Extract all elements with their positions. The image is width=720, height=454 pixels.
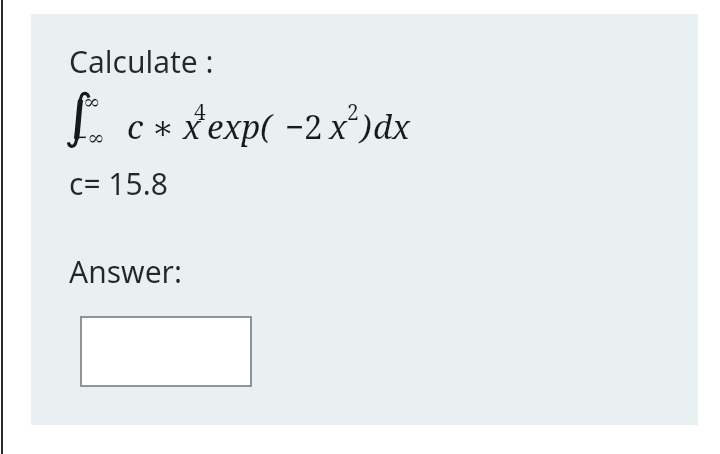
staticText: −∞ xyxy=(75,123,105,152)
staticText: dx xyxy=(373,104,411,149)
staticText: ) xyxy=(360,104,372,149)
staticText: exp( xyxy=(207,104,272,149)
staticText: −2 xyxy=(285,104,323,149)
staticText: Answer: xyxy=(69,251,183,292)
staticText: ∞ xyxy=(83,90,101,114)
staticText: 4 xyxy=(194,98,206,127)
staticText: 2 xyxy=(347,98,359,127)
button[interactable]: Answer input field xyxy=(80,316,252,387)
staticText: Calculate : xyxy=(69,41,214,82)
staticText: c ∗ x xyxy=(127,104,201,149)
staticText: x xyxy=(329,104,348,149)
staticText: c= 15.8 xyxy=(69,163,168,204)
